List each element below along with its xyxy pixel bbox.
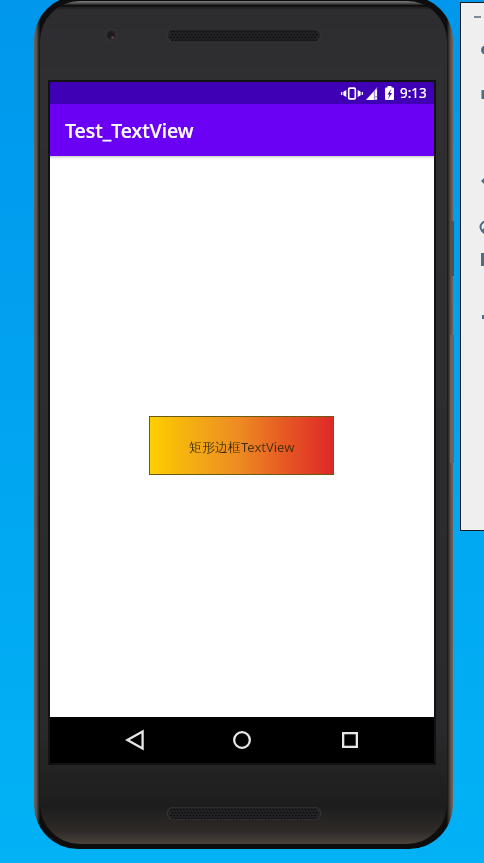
button[interactable]: Home [208,717,276,763]
staticText: 9:13 [400,84,427,102]
button[interactable]: 矩形边框TextView [150,417,333,474]
staticText: 矩形边框TextView [189,438,295,456]
button[interactable]: Recent apps [316,717,384,763]
button[interactable]: Back [101,717,169,763]
staticText: Test_TextView [65,117,194,144]
button[interactable]: Test_TextView [50,104,434,156]
